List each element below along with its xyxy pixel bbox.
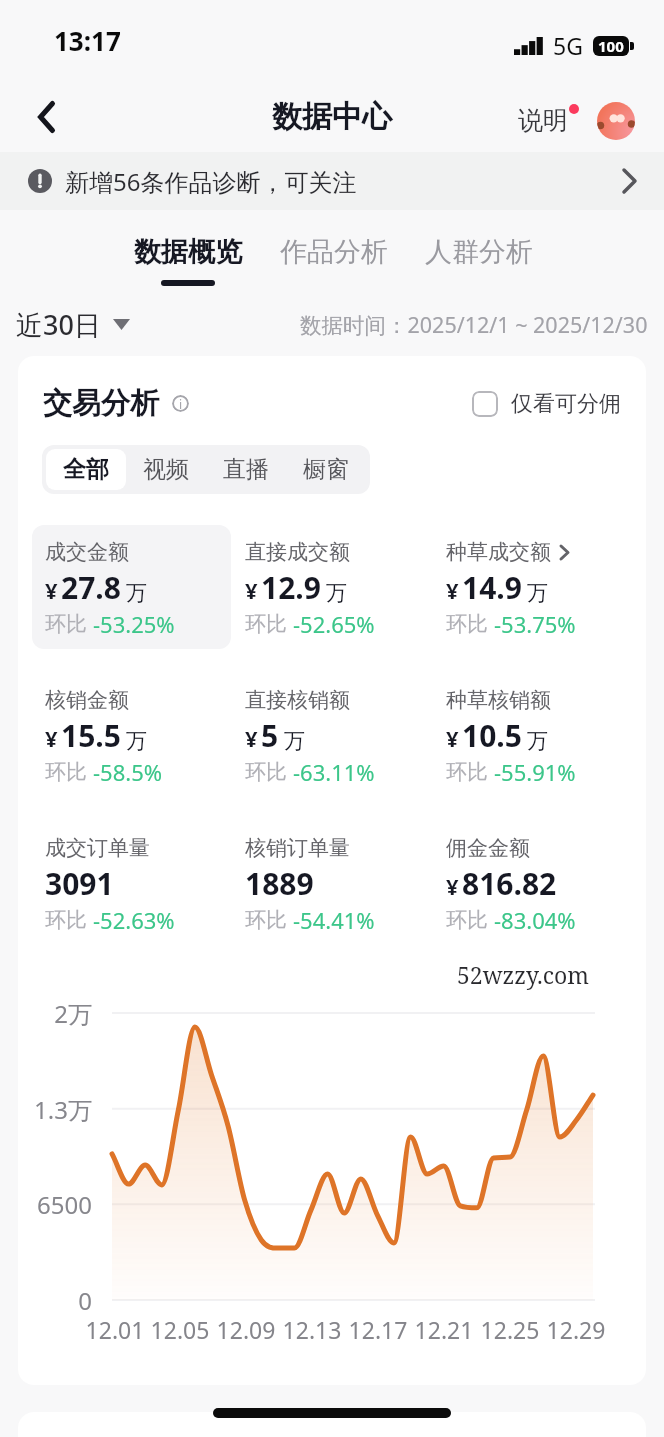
- staticText: -63.11%: [293, 757, 375, 787]
- button[interactable]: Back: [18, 89, 74, 145]
- staticText: 5: [261, 715, 279, 756]
- staticText: ¥: [446, 723, 459, 753]
- staticText: 环比: [446, 905, 494, 934]
- staticText: 816.82: [462, 863, 557, 904]
- staticText: 橱窗: [303, 455, 349, 484]
- staticText: 数据时间：2025/12/1 ~ 2025/12/30: [300, 310, 648, 339]
- staticText: 1889: [245, 863, 314, 904]
- staticText: 12.05: [140, 1314, 220, 1345]
- staticText: 12.21: [404, 1314, 484, 1345]
- staticText: 100: [598, 36, 624, 56]
- button[interactable]: 作品分析: [280, 235, 388, 286]
- staticText: 仅看可分佣: [511, 390, 621, 418]
- staticText: 环比: [245, 609, 293, 638]
- button[interactable]: 说明: [512, 97, 574, 144]
- staticText: 14.9: [462, 567, 522, 608]
- staticText: 人群分析: [425, 235, 533, 269]
- staticText: 新增56条作品诊断，可关注: [65, 165, 357, 198]
- staticText: 12.9: [261, 567, 321, 608]
- button[interactable]: 新增56条作品诊断，可关注: [0, 152, 664, 210]
- button[interactable]: 成交金额: [32, 525, 231, 649]
- staticText: 12.29: [536, 1314, 616, 1345]
- staticText: 成交金额: [45, 539, 129, 565]
- staticText: -53.75%: [494, 609, 576, 639]
- staticText: 万: [126, 580, 147, 606]
- staticText: 数据概览: [134, 235, 242, 269]
- staticText: 种草核销额: [446, 687, 551, 713]
- button[interactable]: Info: [172, 395, 189, 412]
- button[interactable]: 直播: [206, 449, 286, 490]
- staticText: 成交订单量: [45, 835, 150, 861]
- staticText: 环比: [45, 757, 93, 786]
- staticText: 13:17: [54, 23, 121, 58]
- staticText: ¥: [245, 723, 258, 753]
- button[interactable]: Profile: [597, 102, 635, 140]
- staticText: -52.63%: [93, 905, 175, 935]
- staticText: 2万: [18, 997, 92, 1030]
- staticText: 6500: [18, 1188, 92, 1221]
- staticText: 环比: [446, 757, 494, 786]
- staticText: 3091: [45, 863, 114, 904]
- staticText: 万: [527, 728, 548, 754]
- staticText: 12.01: [75, 1314, 155, 1345]
- staticText: 0: [18, 1284, 92, 1317]
- staticText: ¥: [45, 575, 58, 605]
- button[interactable]: 视频: [126, 449, 206, 490]
- staticText: 直播: [223, 455, 269, 484]
- staticText: 种草成交额: [446, 539, 551, 565]
- button[interactable]: 核销订单量: [232, 821, 432, 945]
- staticText: 15.5: [61, 715, 121, 756]
- staticText: 直接成交额: [245, 539, 350, 565]
- staticText: 12.17: [338, 1314, 418, 1345]
- staticText: 交易分析: [43, 385, 159, 422]
- button[interactable]: 全部: [46, 449, 126, 490]
- staticText: 全部: [63, 455, 109, 484]
- staticText: 52wzzy.com: [457, 959, 590, 990]
- staticText: -55.91%: [494, 757, 576, 787]
- button[interactable]: 直接成交额: [232, 525, 432, 649]
- staticText: 核销订单量: [245, 835, 350, 861]
- staticText: 环比: [45, 609, 93, 638]
- staticText: i: [179, 396, 183, 412]
- staticText: 环比: [245, 905, 293, 934]
- staticText: 近30日: [16, 306, 101, 343]
- staticText: ¥: [446, 575, 459, 605]
- staticText: 万: [326, 580, 347, 606]
- staticText: ¥: [446, 871, 459, 901]
- button[interactable]: 人群分析: [425, 235, 533, 286]
- button[interactable]: 种草成交额: [433, 525, 633, 649]
- staticText: 核销金额: [45, 687, 129, 713]
- staticText: 12.25: [470, 1314, 550, 1345]
- staticText: 直接核销额: [245, 687, 350, 713]
- button[interactable]: 近30日: [16, 306, 130, 343]
- button[interactable]: 成交订单量: [32, 821, 231, 945]
- button[interactable]: 仅看可分佣: [472, 390, 621, 418]
- button[interactable]: 佣金金额: [433, 821, 633, 945]
- staticText: 环比: [446, 609, 494, 638]
- staticText: -53.25%: [93, 609, 175, 639]
- staticText: ¥: [245, 575, 258, 605]
- button[interactable]: 种草核销额: [433, 673, 633, 797]
- staticText: 视频: [143, 455, 189, 484]
- staticText: ¥: [45, 723, 58, 753]
- staticText: 环比: [245, 757, 293, 786]
- button[interactable]: 数据概览: [134, 235, 242, 286]
- staticText: 万: [527, 580, 548, 606]
- staticText: -54.41%: [293, 905, 375, 935]
- staticText: -58.5%: [93, 757, 163, 787]
- staticText: 数据中心: [272, 98, 392, 136]
- staticText: 10.5: [462, 715, 522, 756]
- staticText: -83.04%: [494, 905, 576, 935]
- staticText: 12.09: [206, 1314, 286, 1345]
- staticText: 1.3万: [18, 1093, 92, 1126]
- staticText: 作品分析: [280, 235, 388, 269]
- staticText: 说明: [518, 105, 568, 136]
- button[interactable]: 核销金额: [32, 673, 231, 797]
- staticText: 5G: [553, 30, 583, 61]
- staticText: -52.65%: [293, 609, 375, 639]
- button[interactable]: 直接核销额: [232, 673, 432, 797]
- staticText: 万: [284, 728, 305, 754]
- button[interactable]: 橱窗: [286, 449, 366, 490]
- staticText: 27.8: [61, 567, 121, 608]
- staticText: 万: [126, 728, 147, 754]
